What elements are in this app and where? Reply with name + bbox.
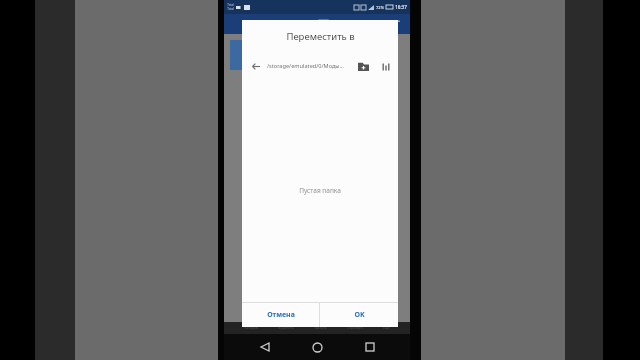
- staticText: Total: [227, 7, 234, 11]
- button[interactable]: OK: [320, 303, 398, 327]
- button[interactable]: Копиров.: [244, 326, 259, 330]
- staticText: /storage/emulated/0/Моды…: [267, 62, 344, 70]
- staticText: 16:37: [395, 4, 407, 10]
- staticText: Выделить: [278, 326, 294, 330]
- staticText: Удалить: [314, 326, 327, 330]
- button[interactable]: Home: [305, 335, 329, 359]
- staticText: OK: [354, 310, 365, 320]
- staticText: Переместить в: [286, 30, 355, 43]
- button[interactable]: Sort: [380, 61, 391, 72]
- staticText: Пустая папка: [299, 186, 341, 195]
- staticText: Отмена: [267, 310, 295, 320]
- staticText: Ещё: [383, 326, 390, 330]
- button[interactable]: Удалить: [314, 326, 327, 330]
- staticText: Копиров.: [244, 326, 259, 330]
- button[interactable]: New folder: [358, 61, 369, 72]
- staticText: Total: [227, 3, 234, 7]
- button[interactable]: Отмена: [242, 303, 319, 327]
- button[interactable]: Up one level: [249, 60, 262, 73]
- button[interactable]: Ещё: [383, 326, 390, 330]
- button[interactable]: More: [352, 17, 366, 31]
- button[interactable]: Recents: [358, 335, 382, 359]
- button[interactable]: Переимен.: [347, 326, 364, 330]
- staticText: 72%: [376, 5, 384, 10]
- button[interactable]: Select all: [316, 17, 330, 31]
- staticText: Переимен.: [347, 326, 364, 330]
- button[interactable]: Выделить: [278, 326, 294, 330]
- button[interactable]: Undo: [388, 17, 402, 31]
- button[interactable]: Back: [253, 335, 277, 359]
